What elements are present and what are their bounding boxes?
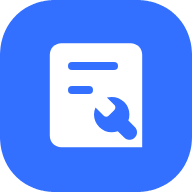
button[interactable]: Document tools app icon — [0, 0, 192, 192]
